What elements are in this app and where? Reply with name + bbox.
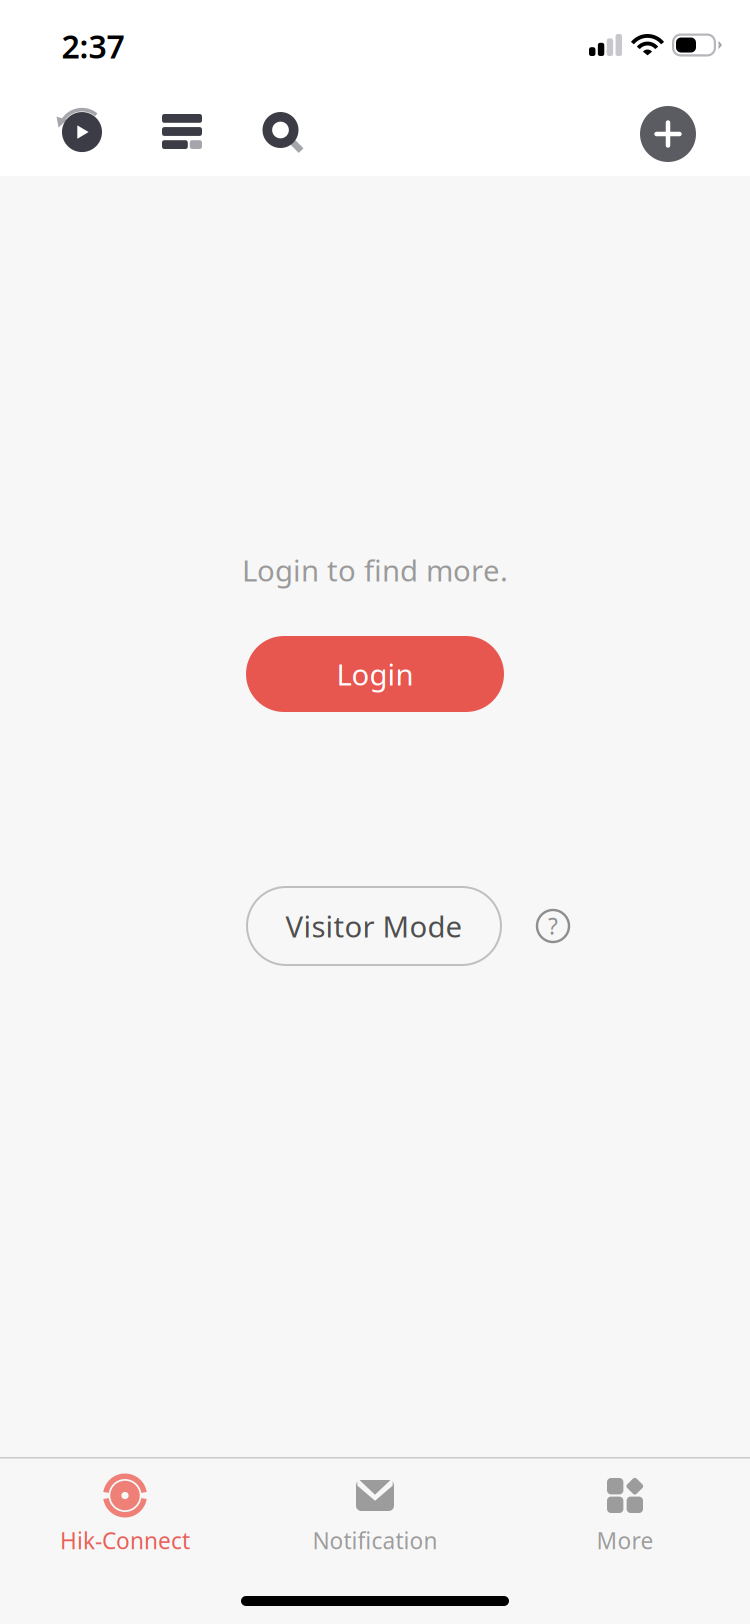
staticText: 2:37 bbox=[61, 25, 124, 67]
staticText: More bbox=[596, 1525, 653, 1556]
button[interactable]: Notification bbox=[250, 1473, 500, 1556]
staticText: Notification bbox=[312, 1525, 437, 1556]
staticText: Login bbox=[336, 654, 413, 693]
button[interactable]: Search bbox=[262, 112, 298, 162]
button[interactable]: Device list bbox=[162, 114, 202, 149]
button[interactable]: Login bbox=[246, 636, 504, 712]
button[interactable]: More bbox=[500, 1473, 750, 1556]
staticText: Hik-Connect bbox=[60, 1525, 190, 1556]
button[interactable]: Hik-Connect bbox=[0, 1473, 250, 1556]
button[interactable]: Add device bbox=[640, 106, 696, 162]
staticText: ? bbox=[548, 911, 558, 941]
button[interactable]: Live view bbox=[58, 100, 106, 154]
button[interactable]: Visitor Mode bbox=[247, 887, 501, 965]
staticText: Login to find more. bbox=[242, 550, 508, 589]
staticText: Visitor Mode bbox=[285, 906, 462, 945]
button[interactable]: Help bbox=[537, 910, 569, 942]
